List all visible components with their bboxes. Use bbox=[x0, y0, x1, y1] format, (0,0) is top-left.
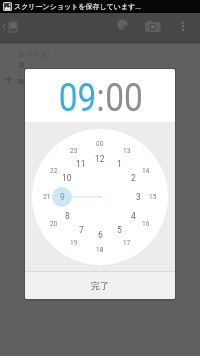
button[interactable] bbox=[8, 21, 18, 33]
staticText: : bbox=[96, 76, 105, 121]
button[interactable] bbox=[117, 19, 128, 30]
staticText: 22 bbox=[50, 167, 58, 175]
staticText: 17 bbox=[123, 239, 131, 247]
staticText: 10 bbox=[62, 173, 72, 183]
button[interactable]: 9 bbox=[52, 189, 72, 205]
button[interactable]: 10 bbox=[57, 170, 77, 186]
staticText: 23 bbox=[70, 147, 78, 155]
button[interactable]: 12 bbox=[90, 151, 110, 167]
staticText: 13 bbox=[123, 147, 131, 155]
button[interactable]: 3 bbox=[128, 189, 148, 205]
staticText: 20 bbox=[50, 220, 58, 228]
staticText: 4 bbox=[131, 211, 136, 221]
staticText: スクリーンショットを保存しています... bbox=[14, 2, 141, 11]
button[interactable]: 13 bbox=[117, 144, 137, 158]
button[interactable]: 18 bbox=[90, 243, 110, 257]
button[interactable]: 7 bbox=[71, 222, 91, 238]
staticText: 16 bbox=[142, 220, 150, 228]
button[interactable]: 14 bbox=[136, 164, 156, 178]
button[interactable] bbox=[2, 23, 7, 31]
staticText: 15 bbox=[149, 193, 157, 201]
staticText: 7 bbox=[79, 225, 84, 235]
button[interactable]: 22 bbox=[44, 164, 64, 178]
button[interactable]: 15 bbox=[143, 190, 163, 204]
staticText: 19 bbox=[70, 239, 78, 247]
staticText: 00 bbox=[96, 140, 104, 148]
staticText: 9 bbox=[60, 192, 65, 202]
button[interactable]: 23 bbox=[64, 144, 84, 158]
button[interactable] bbox=[145, 20, 161, 32]
staticText: 12 bbox=[95, 154, 105, 164]
staticText: 18 bbox=[96, 246, 104, 254]
button[interactable]: 16 bbox=[136, 217, 156, 231]
staticText: 11 bbox=[76, 159, 86, 169]
button[interactable]: 00 bbox=[90, 137, 110, 151]
button[interactable]: 完了 bbox=[25, 272, 175, 299]
staticText: 1 bbox=[117, 159, 122, 169]
button[interactable]: 00 bbox=[105, 76, 143, 121]
staticText: 14 bbox=[142, 167, 150, 175]
button[interactable]: 5 bbox=[109, 222, 129, 238]
button[interactable]: 17 bbox=[117, 236, 137, 250]
staticText: 完了 bbox=[91, 280, 109, 291]
staticText: 5 bbox=[117, 225, 122, 235]
button[interactable]: 4 bbox=[123, 208, 143, 224]
staticText: 3 bbox=[136, 192, 141, 202]
button[interactable]: 21 bbox=[37, 190, 57, 204]
staticText: 6 bbox=[98, 230, 103, 240]
button[interactable]: 20 bbox=[44, 217, 64, 231]
staticText: 2 bbox=[131, 173, 136, 183]
button[interactable]: 19 bbox=[64, 236, 84, 250]
button[interactable]: 11 bbox=[71, 156, 91, 172]
staticText: 21 bbox=[43, 193, 51, 201]
staticText: 8 bbox=[65, 211, 70, 221]
button[interactable]: 6 bbox=[90, 227, 110, 243]
button[interactable]: 1 bbox=[109, 156, 129, 172]
button[interactable]: 2 bbox=[123, 170, 143, 186]
button[interactable]: 09 bbox=[59, 76, 96, 121]
button[interactable] bbox=[181, 21, 185, 33]
staticText: タイトル bbox=[17, 49, 50, 59]
button[interactable]: 8 bbox=[57, 208, 77, 224]
